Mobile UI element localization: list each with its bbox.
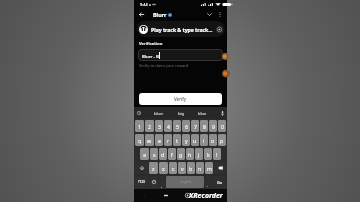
staticText: 3 xyxy=(158,123,161,130)
staticText: blurr xyxy=(154,111,164,116)
staticText: big xyxy=(178,111,184,116)
button[interactable]: p xyxy=(218,134,226,146)
staticText: v xyxy=(181,165,184,172)
button[interactable]: t xyxy=(173,134,181,146)
button[interactable]: j xyxy=(195,148,203,160)
staticText: x xyxy=(162,165,165,172)
button[interactable]: Info xyxy=(216,26,223,33)
button[interactable]: 9 xyxy=(209,120,217,132)
button[interactable]: Play track & type track... xyxy=(137,21,225,37)
button[interactable]: a xyxy=(140,148,149,160)
button[interactable]: z xyxy=(149,162,158,174)
button[interactable]: 7 xyxy=(191,120,199,132)
staticText: 8 xyxy=(203,123,206,130)
button[interactable]: 4 xyxy=(164,120,172,132)
staticText: r xyxy=(167,137,170,144)
button[interactable]: Home xyxy=(183,191,192,200)
button[interactable]: Back xyxy=(137,10,146,19)
staticText: n xyxy=(198,165,202,172)
button[interactable]: 2 xyxy=(145,120,154,132)
staticText: 9:44 xyxy=(140,2,148,7)
button[interactable]: Verify xyxy=(139,93,222,105)
staticText: 9 xyxy=(212,123,215,130)
button[interactable]: Blurr - B xyxy=(138,49,223,61)
staticText: h xyxy=(188,151,192,158)
staticText: c xyxy=(172,165,175,172)
staticText: English xyxy=(180,180,191,184)
button[interactable]: n xyxy=(196,162,204,174)
button[interactable]: 6 xyxy=(182,120,190,132)
button[interactable]: b xyxy=(187,162,195,174)
button[interactable]: Backspace xyxy=(214,162,226,174)
button[interactable]: Go xyxy=(212,176,226,188)
staticText: q xyxy=(138,137,142,144)
button[interactable]: Shift xyxy=(135,162,148,174)
staticText: a xyxy=(143,151,146,158)
staticText: m xyxy=(207,165,212,172)
button[interactable]: f xyxy=(168,148,176,160)
button[interactable]: 0 xyxy=(218,120,226,132)
staticText: i xyxy=(203,137,205,144)
button[interactable]: y xyxy=(182,134,190,146)
staticText: Verify to claim your reward xyxy=(139,63,189,68)
button[interactable]: v xyxy=(178,162,186,174)
staticText: 4 xyxy=(167,123,170,130)
staticText: w xyxy=(147,137,152,144)
button[interactable]: ?123 xyxy=(135,176,148,188)
button[interactable]: 1 xyxy=(135,120,144,132)
staticText: y xyxy=(185,137,188,144)
button[interactable]: More options xyxy=(215,10,224,19)
button[interactable]: e xyxy=(155,134,163,146)
button[interactable]: m xyxy=(205,162,213,174)
button[interactable]: c xyxy=(169,162,177,174)
staticText: b xyxy=(189,165,193,172)
button[interactable]: r xyxy=(164,134,172,146)
staticText: ?123 xyxy=(138,180,145,184)
staticText: t xyxy=(176,137,178,144)
button[interactable]: g xyxy=(177,148,185,160)
button[interactable]: Recents xyxy=(161,191,170,200)
button[interactable]: x xyxy=(159,162,168,174)
button[interactable]: , xyxy=(159,176,165,188)
staticText: XRecorder xyxy=(189,191,223,201)
button[interactable]: d xyxy=(159,148,167,160)
staticText: Go xyxy=(217,180,222,185)
staticText: , xyxy=(161,183,163,188)
staticText: 2 xyxy=(148,123,151,130)
staticText: Blurr - B xyxy=(142,53,159,59)
staticText: 1 xyxy=(138,123,141,130)
staticText: l xyxy=(216,151,218,158)
staticText: Play track & type track... xyxy=(151,26,215,33)
button[interactable]: k xyxy=(204,148,212,160)
button[interactable]: s xyxy=(150,148,158,160)
button[interactable]: 8 xyxy=(200,120,208,132)
button[interactable]: 5 xyxy=(173,120,181,132)
button[interactable]: . xyxy=(205,176,211,188)
button[interactable]: o xyxy=(209,134,217,146)
staticText: u xyxy=(193,137,197,144)
button[interactable]: u xyxy=(191,134,199,146)
staticText: Verify xyxy=(174,96,187,102)
staticText: k xyxy=(207,151,210,158)
staticText: g xyxy=(179,151,183,158)
staticText: s xyxy=(153,151,156,158)
button[interactable]: Emoji xyxy=(149,176,158,188)
staticText: f xyxy=(171,151,173,158)
button[interactable]: h xyxy=(186,148,194,160)
button[interactable]: Space xyxy=(166,176,204,188)
staticText: Verification xyxy=(139,40,163,46)
staticText: 0 xyxy=(221,123,224,130)
button[interactable]: Expand xyxy=(205,10,214,19)
staticText: e xyxy=(158,137,161,144)
staticText: p xyxy=(220,137,224,144)
staticText: Blurr xyxy=(153,11,167,18)
button[interactable]: q xyxy=(135,134,144,146)
staticText: 6 xyxy=(185,123,188,130)
button[interactable]: i xyxy=(200,134,208,146)
staticText: z xyxy=(152,165,155,172)
button[interactable]: l xyxy=(213,148,221,160)
button[interactable]: w xyxy=(145,134,154,146)
button[interactable]: 3 xyxy=(155,120,163,132)
staticText: . xyxy=(207,183,209,188)
